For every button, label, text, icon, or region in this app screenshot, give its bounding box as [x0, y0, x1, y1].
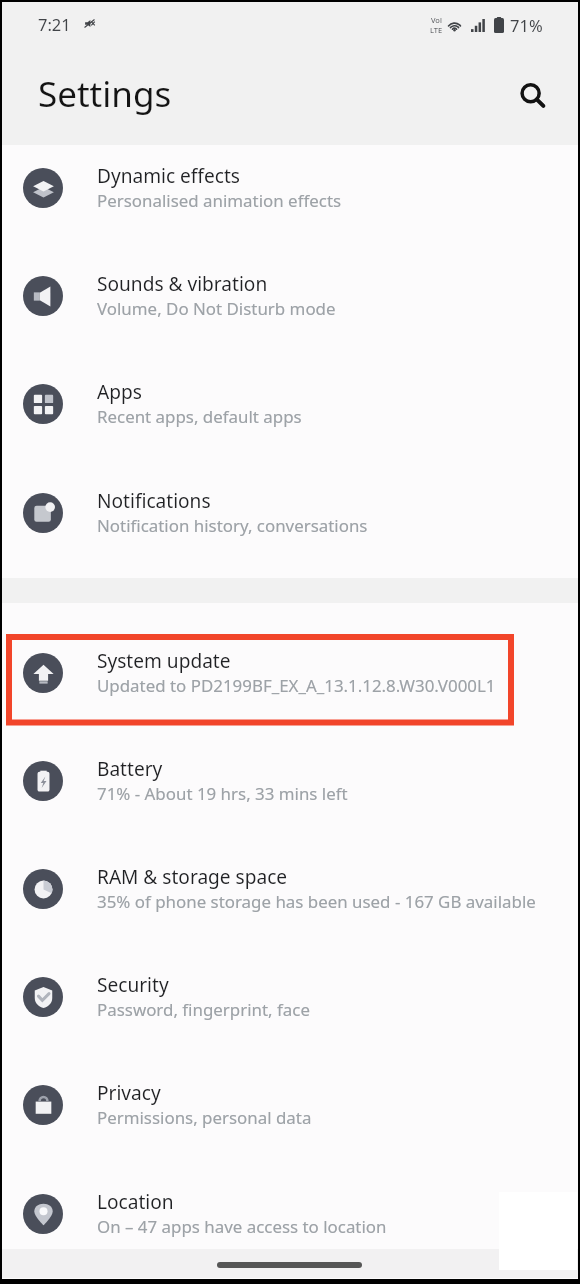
- staticText: Privacy: [97, 1080, 161, 1106]
- button[interactable]: Apps: [2, 363, 578, 471]
- button[interactable]: Privacy: [2, 1064, 578, 1172]
- button[interactable]: Notifications: [2, 472, 578, 580]
- staticText: 71% - About 19 hrs, 33 mins left: [97, 782, 348, 805]
- staticText: Vol: [431, 15, 442, 25]
- staticText: RAM & storage space: [97, 864, 288, 890]
- staticText: On – 47 apps have access to location: [97, 1215, 387, 1238]
- staticText: Volume, Do Not Disturb mode: [97, 297, 336, 320]
- button[interactable]: System update: [2, 632, 578, 740]
- staticText: Settings: [38, 70, 172, 118]
- staticText: Password, fingerprint, face: [97, 998, 310, 1021]
- button[interactable]: Search: [509, 72, 557, 120]
- staticText: Updated to PD2199BF_EX_A_13.1.12.8.W30.V…: [97, 674, 496, 697]
- button[interactable]: Sounds & vibration: [2, 255, 578, 363]
- staticText: Notification history, conversations: [97, 514, 368, 537]
- staticText: Location: [97, 1189, 174, 1215]
- staticText: Personalised animation effects: [97, 189, 342, 212]
- staticText: Security: [97, 972, 169, 998]
- staticText: Permissions, personal data: [97, 1106, 312, 1129]
- button[interactable]: Dynamic effects: [2, 147, 578, 255]
- staticText: Battery: [97, 756, 163, 782]
- staticText: Sounds & vibration: [97, 271, 268, 297]
- staticText: System update: [97, 648, 231, 674]
- staticText: 7:21: [38, 13, 71, 35]
- staticText: LTE: [430, 25, 443, 35]
- staticText: Apps: [97, 379, 142, 405]
- staticText: 35% of phone storage has been used - 167…: [97, 890, 536, 913]
- staticText: 71%: [510, 14, 543, 36]
- button[interactable]: Security: [2, 956, 578, 1064]
- button[interactable]: Location: [2, 1173, 578, 1281]
- staticText: Dynamic effects: [97, 163, 240, 189]
- staticText: Notifications: [97, 488, 211, 514]
- button[interactable]: Battery: [2, 740, 578, 848]
- button[interactable]: RAM & storage space: [2, 848, 578, 956]
- staticText: Recent apps, default apps: [97, 405, 302, 428]
